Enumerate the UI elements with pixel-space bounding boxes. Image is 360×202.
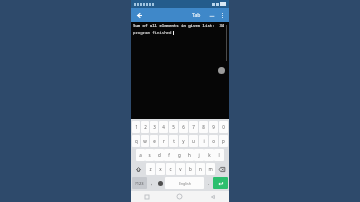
staticText: 3 [153, 124, 156, 130]
staticText: x [159, 166, 162, 172]
button[interactable]: , [148, 177, 155, 189]
staticText: d [158, 152, 161, 158]
staticText: u [192, 138, 195, 144]
button[interactable]: . [205, 177, 212, 189]
staticText: i [203, 138, 205, 144]
staticText: 9 [212, 124, 215, 130]
staticText: program finished [133, 30, 172, 35]
staticText: . [208, 180, 210, 187]
staticText: n [199, 166, 202, 172]
button[interactable]: Emoji [156, 177, 164, 189]
button[interactable]: 9 [209, 121, 218, 133]
button[interactable]: 3 [150, 121, 158, 133]
button[interactable]: English [165, 177, 204, 189]
button[interactable]: o [209, 135, 218, 147]
button[interactable]: s [145, 149, 154, 161]
button[interactable]: w [141, 135, 149, 147]
staticText: 5 [172, 124, 175, 130]
button[interactable]: Home [163, 191, 196, 202]
button[interactable]: Back [133, 9, 145, 21]
button[interactable]: Enter [213, 177, 228, 189]
staticText: 1 [135, 124, 138, 130]
staticText: p [222, 138, 225, 144]
staticText: Tab [192, 12, 201, 19]
button[interactable]: 6 [179, 121, 188, 133]
staticText: k [208, 152, 211, 158]
staticText: 7 [192, 124, 195, 130]
staticText: q [135, 138, 138, 144]
button[interactable]: 0 [219, 121, 228, 133]
staticText: 8 [202, 124, 205, 130]
button[interactable]: v [176, 163, 185, 175]
button[interactable]: Backspace [216, 163, 228, 175]
button[interactable]: Undo [207, 10, 217, 20]
button[interactable]: t [169, 135, 178, 147]
button[interactable]: b [186, 163, 195, 175]
button[interactable]: 4 [159, 121, 168, 133]
staticText: , [151, 180, 153, 187]
button[interactable]: 7 [189, 121, 198, 133]
staticText: b [189, 166, 192, 172]
staticText: 6 [182, 124, 185, 130]
button[interactable]: a [136, 149, 145, 161]
staticText: e [153, 138, 156, 144]
staticText: a [139, 152, 142, 158]
button[interactable]: y [179, 135, 188, 147]
staticText: r [163, 138, 165, 144]
staticText: h [188, 152, 191, 158]
button[interactable]: u [189, 135, 198, 147]
button[interactable]: q [132, 135, 140, 147]
staticText: ?123 [135, 181, 144, 186]
staticText: Sum of all elements in given list: 34 [133, 23, 225, 28]
staticText: w [143, 138, 147, 144]
button[interactable]: Shift [132, 163, 145, 175]
button[interactable]: ?123 [132, 177, 147, 189]
staticText: g [178, 152, 181, 158]
staticText: l [218, 152, 220, 158]
button[interactable]: 8 [199, 121, 208, 133]
button[interactable]: g [174, 149, 184, 161]
staticText: s [148, 152, 151, 158]
button[interactable]: i [199, 135, 208, 147]
button[interactable]: 5 [169, 121, 178, 133]
staticText: 0 [222, 124, 225, 130]
staticText: m [208, 166, 213, 172]
button[interactable]: l [214, 149, 224, 161]
staticText: f [168, 152, 170, 158]
button[interactable]: k [204, 149, 214, 161]
button[interactable]: m [206, 163, 215, 175]
staticText: 2 [144, 124, 147, 130]
staticText: v [179, 166, 182, 172]
button[interactable]: Back [196, 191, 229, 202]
button[interactable]: More options [217, 10, 227, 20]
button[interactable]: Run [218, 67, 225, 74]
button[interactable]: Tab [190, 12, 203, 19]
button[interactable]: 2 [141, 121, 149, 133]
staticText: z [149, 166, 152, 172]
button[interactable]: j [194, 149, 204, 161]
button[interactable]: h [184, 149, 194, 161]
button[interactable]: f [164, 149, 174, 161]
staticText: y [182, 138, 185, 144]
staticText: 4 [162, 124, 165, 130]
staticText: c [169, 166, 172, 172]
button[interactable]: Recents [131, 191, 163, 202]
button[interactable]: d [154, 149, 164, 161]
staticText: t [173, 138, 175, 144]
button[interactable]: p [219, 135, 228, 147]
button[interactable]: n [196, 163, 205, 175]
button[interactable]: c [166, 163, 175, 175]
button[interactable]: r [159, 135, 168, 147]
button[interactable]: z [146, 163, 155, 175]
staticText: o [212, 138, 215, 144]
button[interactable]: e [150, 135, 158, 147]
button[interactable]: 1 [132, 121, 140, 133]
staticText: j [198, 152, 200, 158]
staticText: English [179, 181, 191, 186]
button[interactable]: x [156, 163, 165, 175]
